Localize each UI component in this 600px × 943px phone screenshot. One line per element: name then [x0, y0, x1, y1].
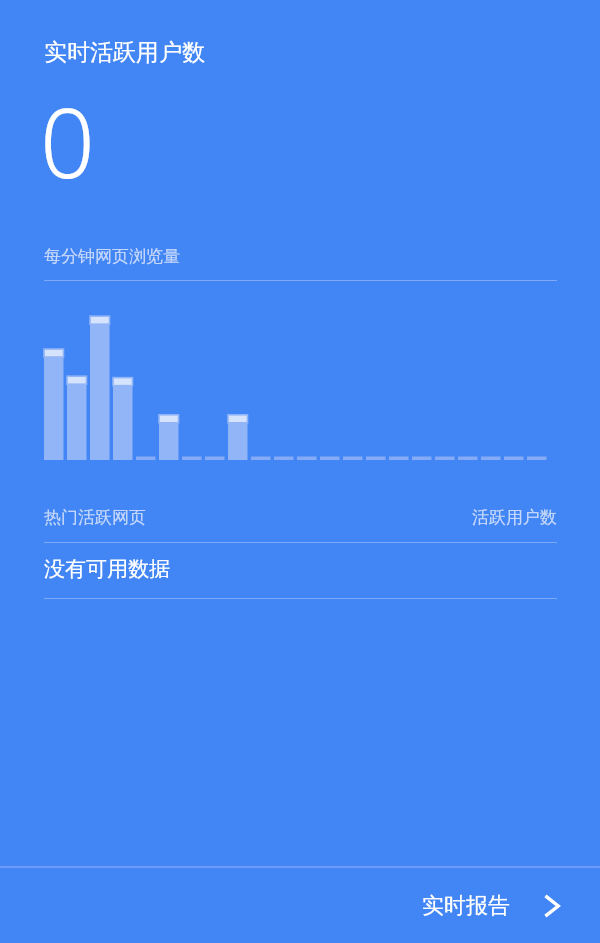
staticText: 热门活跃网页 [44, 507, 146, 528]
staticText: 每分钟网页浏览量 [44, 246, 180, 267]
staticText: 实时报告 [422, 892, 510, 920]
staticText: 0 [40, 75, 95, 206]
button[interactable]: 实时报告 [0, 868, 600, 943]
staticText: 活跃用户数 [472, 507, 557, 528]
staticText: 实时活跃用户数 [44, 38, 205, 67]
staticText: 没有可用数据 [44, 556, 170, 582]
other: 实时报告 [540, 894, 564, 918]
